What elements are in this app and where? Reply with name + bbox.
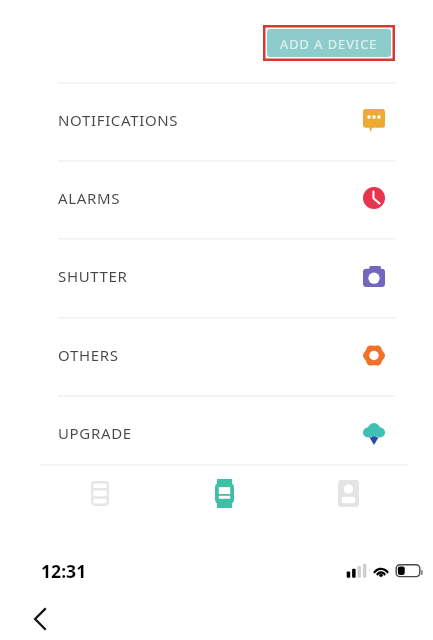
- staticText: SHUTTER: [58, 266, 128, 286]
- button[interactable]: OTHERS: [0, 317, 433, 395]
- staticText: ADD A DEVICE: [280, 35, 378, 52]
- button[interactable]: ALARMS: [0, 160, 433, 238]
- button[interactable]: NOTIFICATIONS: [0, 82, 433, 160]
- button[interactable]: SHUTTER: [0, 238, 433, 316]
- staticText: NOTIFICATIONS: [58, 110, 179, 130]
- button[interactable]: Profile: [322, 467, 374, 519]
- button[interactable]: Back: [23, 602, 57, 636]
- staticText: UPGRADE: [58, 423, 132, 443]
- button[interactable]: List: [74, 467, 126, 519]
- button[interactable]: ADD A DEVICE: [267, 29, 391, 57]
- button[interactable]: Devices: [198, 467, 250, 519]
- button[interactable]: UPGRADE: [0, 395, 433, 473]
- staticText: OTHERS: [58, 345, 119, 365]
- staticText: 12:31: [41, 559, 87, 583]
- staticText: ALARMS: [58, 188, 121, 208]
